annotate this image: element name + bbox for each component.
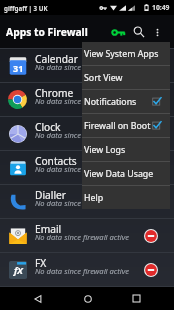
staticText: Help [84, 192, 104, 204]
staticText: No data since firewall active [35, 198, 130, 208]
staticText: Email [35, 222, 62, 236]
staticText: Calendar [35, 52, 79, 66]
staticText: Contacts [35, 154, 77, 168]
staticText: Chrome [35, 86, 74, 100]
button[interactable]: View Data Usage [82, 162, 170, 185]
staticText: No data since firewall active [35, 130, 130, 140]
staticText: No data since firewall active [35, 266, 130, 276]
button[interactable]: Contacts [0, 151, 174, 184]
button[interactable]: 31 [0, 49, 174, 82]
button[interactable]: fX [0, 253, 174, 286]
button[interactable]: Back [26, 287, 49, 310]
staticText: Apps to Firewall [6, 25, 88, 39]
button[interactable]: Search [129, 22, 149, 42]
button[interactable]: Chrome [0, 83, 174, 116]
staticText: No data since firewall active [35, 62, 130, 72]
button[interactable]: Home [76, 287, 99, 310]
button[interactable]: Blocked [140, 225, 162, 247]
button[interactable]: Gallery [0, 287, 174, 310]
button[interactable]: Firewall toggle [107, 21, 129, 43]
staticText: No data since firewall active [35, 295, 130, 304]
button[interactable]: Help [82, 186, 170, 209]
staticText: Clock [35, 120, 61, 134]
staticText: View Logs [84, 144, 126, 156]
staticText: 10:49 [152, 3, 170, 12]
staticText: FX [35, 256, 47, 270]
staticText: Gallery [35, 285, 69, 299]
button[interactable]: More options [149, 24, 165, 40]
staticText: View System Apps [84, 48, 159, 60]
button[interactable]: Recents [125, 287, 148, 310]
button[interactable]: View Logs [82, 138, 170, 161]
button[interactable]: Sort View [82, 66, 170, 89]
button[interactable]: Blocked [140, 259, 162, 281]
staticText: Dialler [35, 188, 66, 202]
button[interactable]: Clock [0, 117, 174, 150]
staticText: giffgaff | 3 UK [4, 4, 48, 12]
staticText: Firewall on Boot [84, 120, 151, 132]
staticText: Sort View [84, 72, 123, 84]
button[interactable]: Firewall on Boot [82, 114, 170, 137]
staticText: No data since firewall active [35, 96, 130, 106]
staticText: No data since firewall active [35, 164, 130, 174]
staticText: Notifications [84, 96, 137, 108]
staticText: 31 [13, 62, 24, 74]
button[interactable]: Dialler [0, 185, 174, 218]
button[interactable]: Notifications [82, 90, 170, 113]
staticText: No data since firewall active [35, 232, 130, 242]
button[interactable]: View System Apps [82, 42, 170, 65]
staticText: fX [14, 264, 23, 276]
button[interactable]: Email [0, 219, 174, 252]
staticText: View Data Usage [84, 168, 154, 180]
